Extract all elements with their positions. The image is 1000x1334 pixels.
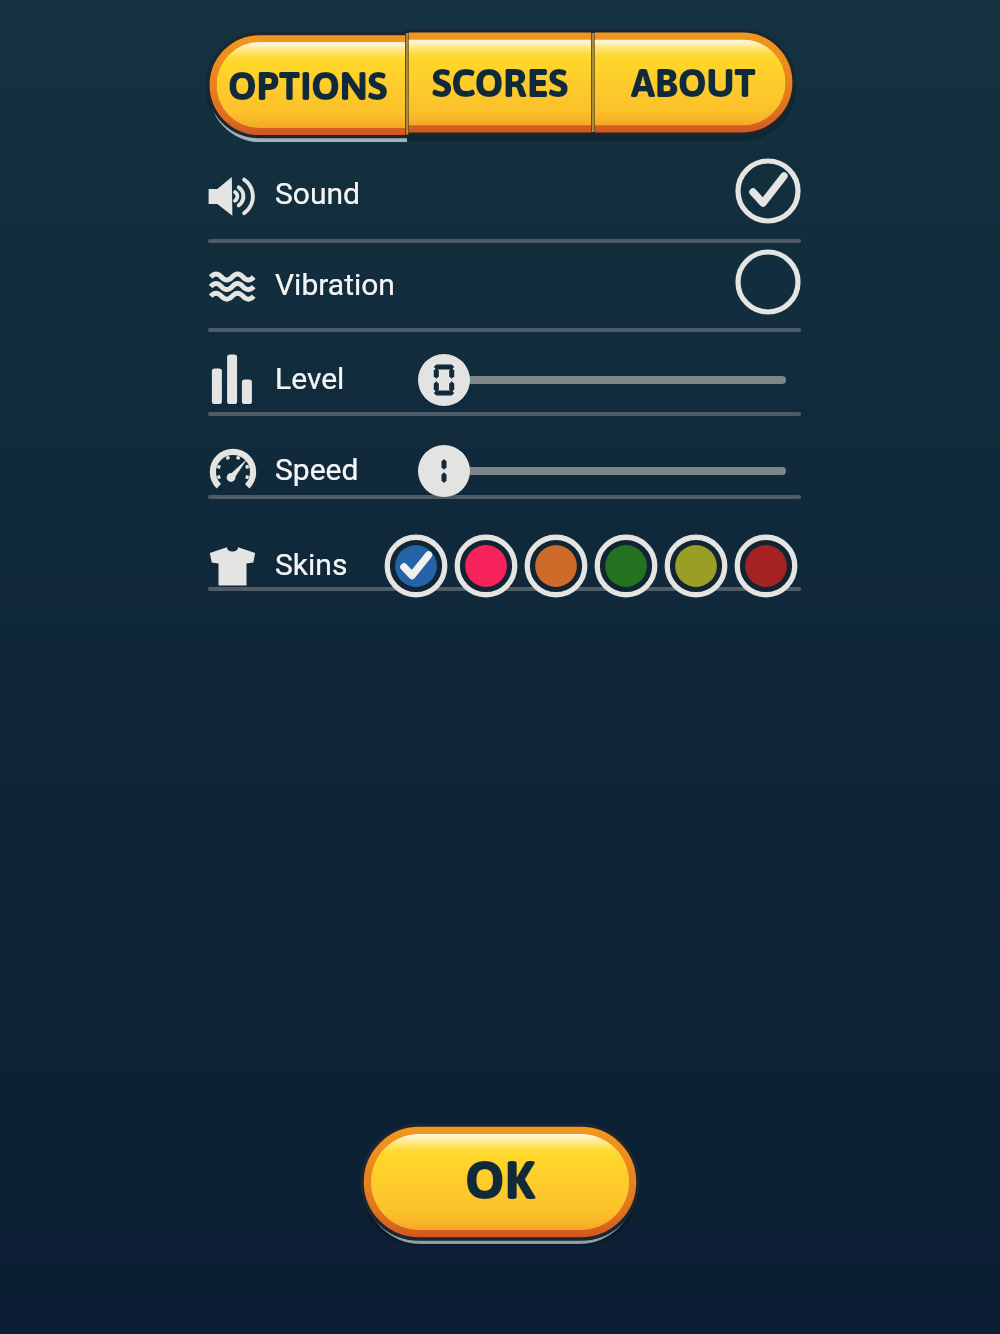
button[interactable]: Sound	[208, 152, 801, 241]
staticText: Skins	[275, 547, 348, 582]
staticText: Sound	[275, 176, 360, 211]
button[interactable]: Level	[208, 330, 801, 414]
button[interactable]: ABOUT	[593, 31, 794, 134]
staticText: Vibration	[275, 267, 395, 302]
button[interactable]: SCORES	[407, 31, 593, 134]
button[interactable]: Vibration	[208, 241, 801, 330]
staticText: Speed	[275, 452, 359, 487]
staticText: OK	[465, 1149, 536, 1211]
button[interactable]: OK	[362, 1125, 638, 1239]
button[interactable]: Skins	[208, 497, 801, 589]
staticText: ABOUT	[631, 61, 756, 106]
staticText: OPTIONS	[228, 64, 388, 109]
button[interactable]: Speed	[208, 414, 801, 497]
staticText: SCORES	[432, 61, 568, 106]
staticText: Level	[275, 361, 345, 396]
button[interactable]: OPTIONS	[208, 34, 407, 137]
